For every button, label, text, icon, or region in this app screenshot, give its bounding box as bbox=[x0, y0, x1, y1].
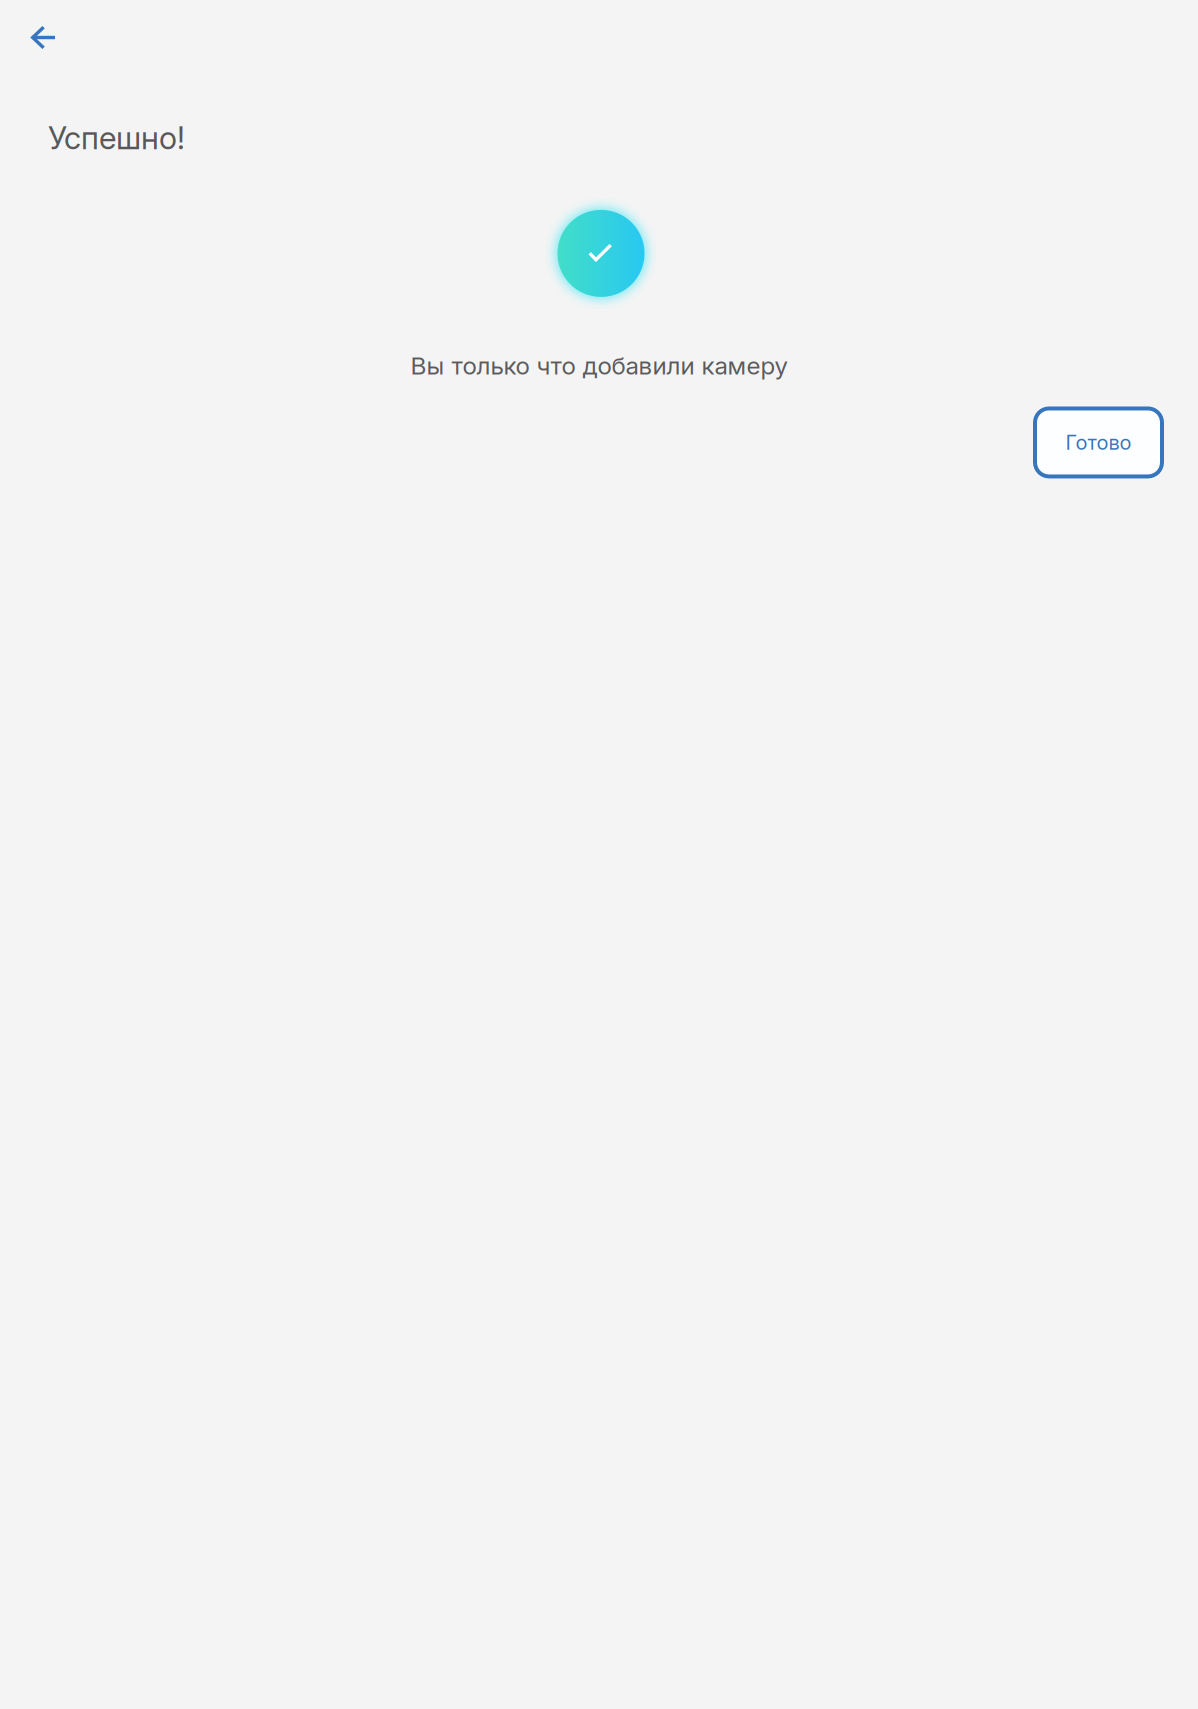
button[interactable]: Готово bbox=[1033, 406, 1164, 478]
staticText: Вы только что добавили камеру bbox=[410, 351, 787, 380]
staticText: Успешно! bbox=[48, 119, 185, 157]
staticText: Готово bbox=[1065, 430, 1131, 454]
button[interactable]: Back bbox=[16, 11, 71, 64]
